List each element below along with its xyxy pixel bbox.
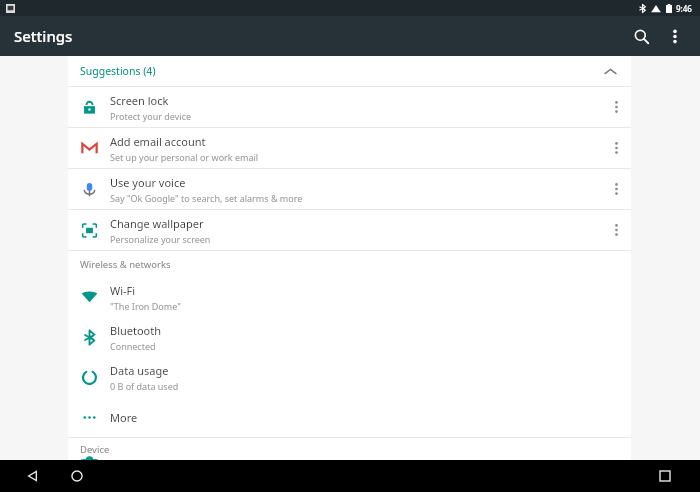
- button[interactable]: Dismiss options: [601, 169, 631, 209]
- button[interactable]: Use your voice: [68, 169, 631, 209]
- button[interactable]: Recent apps: [650, 461, 680, 491]
- button[interactable]: Dismiss options: [601, 128, 631, 168]
- button[interactable]: Dismiss options: [601, 210, 631, 250]
- staticText: Connected: [110, 340, 156, 352]
- button[interactable]: Data usage: [68, 357, 631, 397]
- staticText: Change wallpaper: [110, 216, 204, 231]
- button[interactable]: Add email account: [68, 128, 631, 168]
- staticText: Personalize your screen: [110, 233, 211, 245]
- staticText: Use your voice: [110, 175, 186, 190]
- other: Collapse: [595, 56, 625, 86]
- button[interactable]: Suggestions (4): [68, 56, 631, 86]
- button[interactable]: Wi-Fi: [68, 277, 631, 317]
- staticText: Wi-Fi: [110, 283, 136, 298]
- staticText: Device: [80, 443, 110, 456]
- staticText: More: [110, 410, 138, 425]
- button[interactable]: Search: [624, 19, 658, 53]
- staticText: Suggestions (4): [80, 64, 156, 78]
- staticText: Wireless & networks: [80, 258, 171, 271]
- button[interactable]: Home: [62, 461, 92, 491]
- staticText: 9:46: [676, 3, 692, 14]
- staticText: Screen lock: [110, 93, 169, 108]
- button[interactable]: Bluetooth: [68, 317, 631, 357]
- button[interactable]: Back: [18, 461, 48, 491]
- button[interactable]: Change wallpaper: [68, 210, 631, 250]
- staticText: "The Iron Dome": [110, 300, 181, 312]
- staticText: Settings: [14, 26, 73, 46]
- button[interactable]: Dismiss options: [601, 87, 631, 127]
- staticText: Add email account: [110, 134, 206, 149]
- staticText: Bluetooth: [110, 323, 162, 338]
- staticText: Set up your personal or work email: [110, 151, 259, 163]
- button[interactable]: Screen lock: [68, 87, 631, 127]
- staticText: 0 B of data used: [110, 380, 179, 392]
- button[interactable]: More: [68, 397, 631, 437]
- staticText: Say "Ok Google" to search, set alarms & …: [110, 192, 303, 204]
- staticText: Protect your device: [110, 110, 192, 122]
- button[interactable]: More options: [658, 19, 692, 53]
- staticText: Data usage: [110, 363, 169, 378]
